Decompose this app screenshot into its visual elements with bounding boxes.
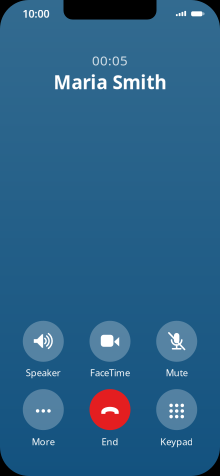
staticText: Mute bbox=[166, 366, 188, 379]
staticText: FaceTime bbox=[90, 366, 130, 379]
button[interactable]: End bbox=[79, 389, 141, 447]
staticText: 10:00 bbox=[22, 6, 49, 21]
button[interactable]: Keypad bbox=[146, 389, 208, 447]
button[interactable]: Mute bbox=[146, 321, 208, 378]
button[interactable]: Speaker bbox=[12, 321, 74, 378]
staticText: More bbox=[32, 435, 55, 448]
staticText: Speaker bbox=[26, 366, 61, 379]
staticText: End bbox=[101, 435, 118, 448]
staticText: Keypad bbox=[160, 435, 193, 448]
staticText: 00:05 bbox=[92, 51, 128, 69]
staticText: Maria Smith bbox=[53, 69, 166, 94]
button[interactable]: FaceTime bbox=[79, 321, 141, 378]
button[interactable]: More bbox=[12, 389, 74, 447]
